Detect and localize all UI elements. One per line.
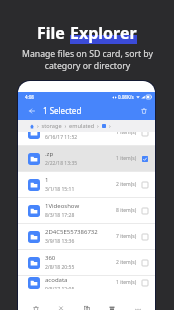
staticText: 6/16/17 11:52 (45, 134, 78, 141)
button[interactable]: Select 2D4C5E557386732 (142, 234, 148, 240)
staticText: 2 item(s) (116, 181, 137, 188)
staticText: 360 (45, 254, 56, 262)
staticText: 8 item(s) (116, 207, 137, 214)
staticText: › (106, 122, 114, 130)
staticText: 1Videoshow (45, 202, 80, 210)
staticText: Manage files on SD card, sort by categor… (22, 48, 153, 72)
staticText: File (37, 22, 70, 44)
staticText: 8/3/18 17:28 (45, 212, 75, 219)
staticText: Explorer (70, 22, 137, 44)
staticText: 0.08K/s (118, 94, 134, 100)
staticText: 2/22/18 13:35 (45, 160, 78, 167)
staticText: 3/1/18 15:11 (45, 186, 75, 193)
button[interactable]: Select Alarms (142, 132, 148, 136)
button[interactable]: .zp (18, 146, 155, 171)
button[interactable]: Back (26, 105, 37, 116)
button[interactable]: 2D4C5E557386732 (18, 224, 155, 249)
staticText: 1 item(s) (116, 155, 137, 162)
button[interactable]: 1 (18, 172, 155, 197)
staticText: 1 item(s) (116, 279, 137, 286)
staticText: 3/9/18 13:36 (45, 238, 75, 245)
button[interactable]: Select 360 (142, 260, 148, 266)
staticText: .zp (45, 150, 54, 158)
button[interactable]: Select 1Videoshow (142, 208, 148, 214)
staticText: 1 Selected (43, 105, 82, 116)
button[interactable]: Select .zp (142, 156, 148, 162)
button[interactable]: Cut (53, 301, 69, 310)
staticText: › storage › emulated › (34, 122, 102, 130)
staticText: 9/5/17 12:05 (45, 286, 75, 289)
staticText: acodata (45, 276, 68, 284)
button[interactable]: Select 1 (142, 182, 148, 188)
staticText: 2/8/18 20:55 (45, 264, 75, 271)
button[interactable]: Alarms (18, 132, 155, 145)
button[interactable]: Delete (28, 301, 44, 310)
button[interactable]: Copy (79, 301, 95, 310)
staticText: 2 item(s) (116, 259, 137, 266)
staticText: 2D4C5E557386732 (45, 228, 98, 236)
staticText: 1 (45, 176, 49, 184)
button[interactable]: 1Videoshow (18, 198, 155, 223)
button[interactable]: Select acodata (142, 280, 148, 286)
staticText: 1 item(s) (116, 132, 137, 136)
button[interactable]: 360 (18, 250, 155, 275)
staticText: 7 item(s) (116, 233, 137, 240)
button[interactable]: Archive (104, 301, 120, 310)
staticText: 4:08 (25, 94, 34, 100)
button[interactable]: More options (130, 301, 146, 310)
button[interactable]: Delete (137, 104, 151, 118)
button[interactable]: acodata (18, 276, 155, 289)
